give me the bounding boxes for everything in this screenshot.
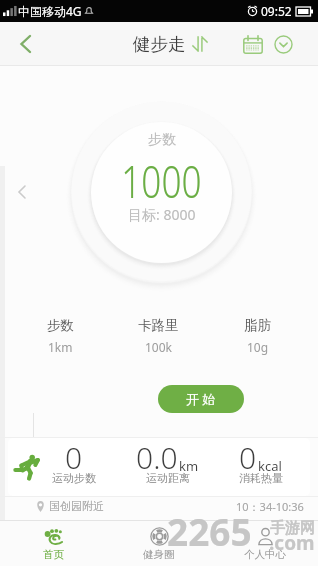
staticText: 首页 <box>43 548 64 561</box>
staticText: 0 <box>65 438 83 478</box>
button[interactable]: 0 <box>8 438 310 496</box>
staticText: 10g <box>247 339 269 355</box>
staticText: 开 始 <box>186 390 216 408</box>
staticText: 运动距离 <box>146 471 190 485</box>
staticText: 1000 <box>121 152 202 211</box>
staticText: 1km <box>48 339 73 355</box>
staticText: 100k <box>145 339 173 355</box>
button[interactable]: Expand <box>268 29 298 59</box>
staticText: 脂肪 <box>244 317 271 334</box>
staticText: 09:52 <box>261 3 292 19</box>
staticText: 健步走 <box>133 33 186 55</box>
staticText: 卡路里 <box>138 317 179 334</box>
staticText: 0.0 <box>136 438 178 478</box>
button[interactable]: 个人中心 <box>212 521 318 566</box>
button[interactable]: Back <box>8 27 42 61</box>
button[interactable]: 健身圈 <box>106 521 212 566</box>
staticText: 10：34-10:36 <box>236 499 304 514</box>
button[interactable]: Calendar <box>238 29 268 59</box>
button[interactable]: 开 始 <box>158 385 244 413</box>
staticText: kcal <box>258 457 282 475</box>
staticText: km <box>179 457 199 475</box>
staticText: 个人中心 <box>244 548 286 561</box>
staticText: 目标: 8000 <box>128 205 196 224</box>
staticText: 消耗热量 <box>239 471 283 485</box>
staticText: 中国移动4G <box>18 3 82 19</box>
staticText: 步数 <box>148 131 176 149</box>
staticText: 手游网 <box>270 519 315 538</box>
staticText: 国创园附近 <box>49 499 104 513</box>
staticText: 2265 <box>167 506 252 556</box>
staticText: 0 <box>239 438 257 478</box>
staticText: .com <box>269 530 315 556</box>
staticText: 健身圈 <box>143 548 175 561</box>
button[interactable]: 首页 <box>0 521 106 566</box>
staticText: 运动步数 <box>52 471 96 485</box>
staticText: 步数 <box>47 317 74 334</box>
